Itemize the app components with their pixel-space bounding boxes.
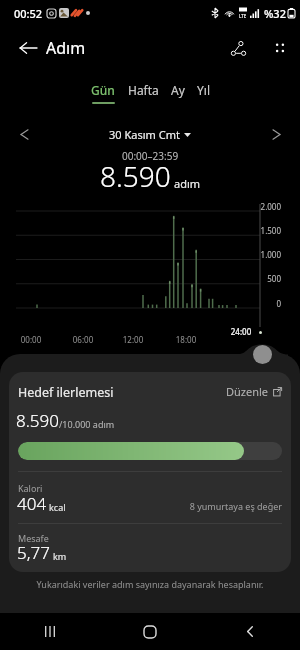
staticText: 404 [17,492,47,515]
staticText: Düzenle [226,384,269,399]
button[interactable]: Düzenle [226,384,282,399]
staticText: 8 yumurtaya eş değer [182,500,282,512]
staticText: 24:00 [221,326,261,337]
staticText: 00:52 [14,6,43,21]
staticText: 1.000 [241,249,281,260]
button[interactable]: More options [260,28,300,68]
staticText: Gün [91,82,115,98]
button[interactable]: Yıl [190,79,217,105]
staticText: 00:00 [11,334,51,345]
button[interactable]: Previous day [13,123,35,145]
staticText: 8.590 [16,409,59,432]
staticText: 18:00 [166,334,206,345]
button[interactable]: Expand details [253,345,272,364]
staticText: LTE [239,13,247,19]
staticText: Mesafe [18,532,49,544]
staticText: %32 [264,6,286,21]
staticText: 06:00 [63,334,103,345]
staticText: adım [174,176,201,191]
staticText: Ay [171,82,185,98]
button[interactable]: Share [216,26,260,70]
button[interactable]: Back [200,613,300,650]
staticText: 8.590 [100,157,171,195]
staticText: Yıl [197,82,210,98]
staticText: kcal [49,501,66,513]
staticText: 30 Kasım Cmt [109,127,180,142]
button[interactable]: Hafta [121,79,165,105]
staticText: Hedef ilerlemesi [18,384,114,401]
button[interactable]: Back [6,26,50,70]
staticText: 500 [241,273,281,284]
staticText: km [53,550,67,562]
staticText: Yukarıdaki veriler adım sayınıza dayanar… [0,578,300,590]
staticText: Hafta [128,82,159,98]
staticText: 5,77 [17,541,50,564]
staticText: 2.000 [241,201,281,212]
button[interactable]: Recents [0,613,100,650]
staticText: 12:00 [113,334,153,345]
button[interactable]: Ay [164,79,191,105]
staticText: 1.500 [241,225,281,236]
button[interactable]: Next day [265,123,287,145]
button[interactable]: Gün [85,79,120,105]
staticText: Adım [46,37,86,59]
button[interactable]: Home [100,613,200,650]
button[interactable]: 30 Kasım Cmt [109,127,191,142]
staticText: /10.000 adım [59,418,115,430]
staticText: 0 [241,298,281,309]
staticText: 00:00–23:59 [122,149,179,163]
staticText: Kalori [18,482,43,494]
